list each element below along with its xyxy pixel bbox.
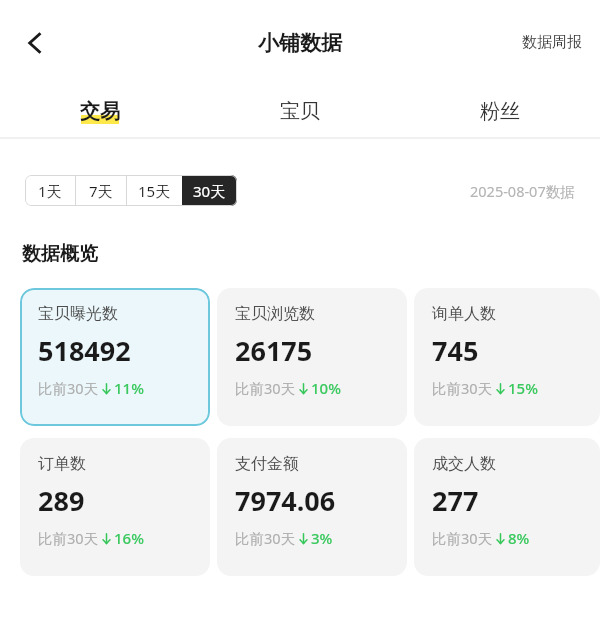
staticText: 宝贝浏览数 bbox=[235, 304, 315, 324]
staticText: 518492 bbox=[38, 332, 131, 369]
staticText: 30天 bbox=[193, 181, 226, 201]
button[interactable]: 数据周报 bbox=[504, 23, 600, 62]
staticText: 11% bbox=[114, 378, 144, 398]
button[interactable]: Back bbox=[12, 20, 58, 66]
button[interactable]: 交易 bbox=[0, 85, 200, 137]
button[interactable]: 宝贝 bbox=[200, 85, 400, 137]
staticText: 15% bbox=[508, 378, 538, 398]
staticText: 7天 bbox=[89, 181, 113, 201]
staticText: 订单数 bbox=[38, 454, 86, 474]
staticText: 询单人数 bbox=[432, 304, 496, 324]
staticText: 数据概览 bbox=[22, 242, 98, 266]
staticText: 比前30天 bbox=[38, 378, 99, 398]
button[interactable]: 宝贝浏览数 bbox=[217, 288, 407, 426]
button[interactable]: 询单人数 bbox=[414, 288, 600, 426]
staticText: 粉丝 bbox=[480, 99, 520, 124]
staticText: 比前30天 bbox=[235, 528, 296, 548]
staticText: 比前30天 bbox=[432, 528, 493, 548]
staticText: 3% bbox=[311, 528, 333, 548]
staticText: 10% bbox=[311, 378, 341, 398]
staticText: 26175 bbox=[235, 332, 313, 369]
staticText: 15天 bbox=[138, 181, 171, 201]
button[interactable]: 成交人数 bbox=[414, 438, 600, 576]
staticText: 成交人数 bbox=[432, 454, 496, 474]
button[interactable]: 15天 bbox=[127, 175, 182, 206]
staticText: 数据周报 bbox=[522, 33, 582, 52]
staticText: 8% bbox=[508, 528, 530, 548]
button[interactable]: 宝贝曝光数 bbox=[20, 288, 210, 426]
staticText: 2025-08-07数据 bbox=[470, 181, 575, 201]
staticText: 1天 bbox=[38, 181, 62, 201]
staticText: 交易 bbox=[80, 99, 120, 124]
button[interactable]: 30天 bbox=[182, 175, 237, 206]
staticText: 支付金额 bbox=[235, 454, 299, 474]
staticText: 小铺数据 bbox=[258, 30, 342, 56]
staticText: 7974.06 bbox=[235, 482, 336, 519]
staticText: 16% bbox=[114, 528, 144, 548]
staticText: 宝贝曝光数 bbox=[38, 304, 118, 324]
staticText: 277 bbox=[432, 482, 479, 519]
staticText: 比前30天 bbox=[432, 378, 493, 398]
button[interactable]: 7天 bbox=[76, 175, 126, 206]
staticText: 745 bbox=[432, 332, 479, 369]
staticText: 289 bbox=[38, 482, 85, 519]
staticText: 宝贝 bbox=[280, 99, 320, 124]
button[interactable]: 订单数 bbox=[20, 438, 210, 576]
button[interactable]: 1天 bbox=[25, 175, 75, 206]
staticText: 比前30天 bbox=[235, 378, 296, 398]
button[interactable]: 粉丝 bbox=[400, 85, 600, 137]
button[interactable]: 支付金额 bbox=[217, 438, 407, 576]
staticText: 比前30天 bbox=[38, 528, 99, 548]
